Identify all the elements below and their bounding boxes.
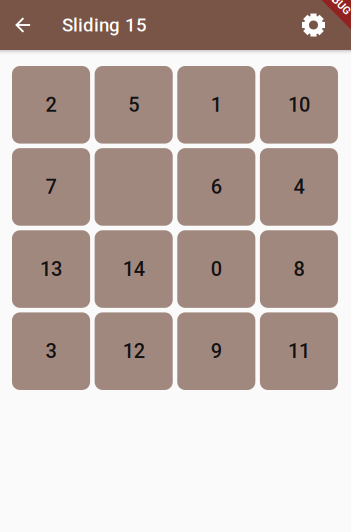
staticText: 8: [293, 257, 304, 281]
staticText: 2: [45, 93, 56, 116]
button[interactable]: 6: [177, 148, 255, 226]
button[interactable]: 3: [12, 312, 90, 390]
button[interactable]: 10: [260, 66, 338, 144]
staticText: 4: [293, 175, 304, 199]
staticText: 10: [288, 93, 310, 116]
button[interactable]: 4: [260, 148, 338, 226]
button[interactable]: 2: [12, 66, 90, 144]
staticText: 1: [211, 93, 222, 116]
staticText: 3: [45, 339, 56, 363]
button[interactable]: 8: [260, 230, 338, 308]
staticText: 5: [128, 93, 139, 116]
staticText: 11: [288, 339, 310, 363]
button[interactable]: 14: [95, 230, 173, 308]
button[interactable]: 9: [177, 312, 255, 390]
staticText: 12: [123, 339, 145, 363]
button[interactable]: 1: [177, 66, 255, 144]
button[interactable]: [95, 148, 173, 226]
staticText: 0: [211, 257, 222, 281]
staticText: 6: [211, 175, 222, 199]
button[interactable]: 11: [260, 312, 338, 390]
staticText: 7: [45, 175, 56, 199]
button[interactable]: 0: [177, 230, 255, 308]
button[interactable]: 7: [12, 148, 90, 226]
button[interactable]: 13: [12, 230, 90, 308]
staticText: Sliding 15: [62, 14, 147, 36]
button[interactable]: Back: [0, 0, 46, 50]
button[interactable]: 5: [95, 66, 173, 144]
staticText: 9: [211, 339, 222, 363]
button[interactable]: 12: [95, 312, 173, 390]
staticText: 14: [123, 257, 145, 281]
button[interactable]: Settings: [288, 0, 339, 50]
staticText: DEBUG: [319, 0, 351, 7]
staticText: 13: [40, 257, 62, 281]
